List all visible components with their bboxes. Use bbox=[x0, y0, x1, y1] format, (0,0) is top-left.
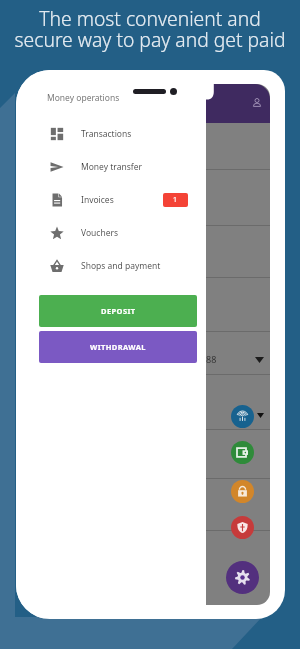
staticText: Money transfer bbox=[81, 161, 143, 173]
button[interactable]: Account bbox=[247, 93, 267, 113]
staticText: Invoices bbox=[81, 194, 114, 206]
staticText: 88 bbox=[206, 353, 217, 365]
button[interactable]: Money transfer bbox=[16, 150, 206, 183]
staticText: Transactions bbox=[81, 128, 132, 140]
staticText: Vouchers bbox=[81, 227, 119, 239]
button[interactable]: Security bbox=[231, 516, 254, 539]
staticText: Shops and payment bbox=[81, 260, 161, 272]
staticText: 1 bbox=[173, 195, 178, 205]
button[interactable]: Vouchers bbox=[16, 216, 206, 249]
staticText: WITHDRAWAL bbox=[90, 342, 146, 352]
button[interactable]: Lock bbox=[231, 480, 254, 503]
button[interactable]: Settings bbox=[226, 561, 259, 594]
button[interactable]: Transactions bbox=[16, 117, 206, 150]
button[interactable]: Wallet bbox=[231, 441, 254, 464]
staticText: The most convenient and secure way to pa… bbox=[0, 5, 300, 53]
staticText: Money operations bbox=[47, 92, 120, 104]
button[interactable]: WITHDRAWAL bbox=[39, 331, 197, 363]
button[interactable]: Fingerprint bbox=[231, 405, 254, 428]
button[interactable]: Invoices bbox=[16, 183, 206, 216]
button[interactable]: DEPOSIT bbox=[39, 295, 197, 327]
button[interactable]: Shops and payment bbox=[16, 249, 206, 282]
staticText: DEPOSIT bbox=[101, 306, 136, 316]
